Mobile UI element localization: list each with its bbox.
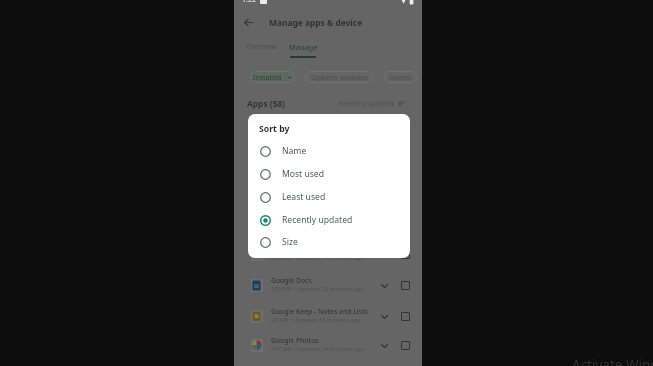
button[interactable]: Least used	[248, 186, 410, 208]
button[interactable]: Recently updated	[339, 96, 405, 110]
staticText: Games	[389, 73, 412, 82]
button[interactable]: Size	[248, 231, 410, 253]
button[interactable]: Installed	[250, 71, 295, 83]
button[interactable]: Expand details	[378, 249, 390, 261]
staticText: Least used	[282, 191, 326, 203]
staticText: 1:22	[242, 0, 256, 3]
staticText: 808 MB • Updated 31 minutes ago	[271, 254, 364, 262]
staticText: Most used	[282, 168, 325, 180]
staticText: Manage	[289, 42, 318, 52]
staticText: Activate Windows	[572, 356, 653, 366]
staticText: Installed	[253, 73, 282, 82]
button[interactable]: Expand details	[378, 280, 390, 292]
button[interactable]: Google Keep - Notes and Lists	[234, 297, 422, 327]
staticText: Name	[282, 145, 307, 157]
staticText: Size	[282, 236, 298, 248]
staticText: 347 MB • Updated 34 minutes ago	[271, 345, 364, 353]
staticText: Google Docs	[271, 276, 312, 285]
button[interactable]: Select app	[399, 310, 411, 322]
button[interactable]: Expand details	[378, 340, 390, 352]
staticText: Manage apps & device	[269, 17, 363, 28]
staticText: Sort by	[259, 123, 290, 135]
button[interactable]: 808 MB • Updated 31 minutes ago	[234, 235, 422, 265]
button[interactable]: Google Photos	[234, 326, 422, 356]
staticText: Google Photos	[271, 336, 319, 345]
button[interactable]: Expand details	[378, 311, 390, 323]
staticText: Google Keep - Notes and Lists	[271, 307, 368, 316]
staticText: 20 MB • Updated 33 minutes ago	[271, 316, 361, 324]
staticText: Updates available	[311, 73, 369, 82]
staticText: Recently updated	[339, 99, 394, 108]
button[interactable]: Google Docs	[234, 266, 422, 296]
button[interactable]: Select app	[399, 279, 411, 291]
button[interactable]: Name	[248, 140, 410, 162]
button[interactable]: Select app	[399, 248, 411, 260]
button[interactable]: Updates available	[305, 71, 374, 83]
button[interactable]: Overview	[242, 36, 280, 56]
staticText: Apps (58)	[247, 98, 286, 109]
button[interactable]: Manage	[285, 36, 321, 62]
staticText: Overview	[246, 42, 277, 51]
button[interactable]: Games	[384, 71, 417, 83]
button[interactable]: Most used	[248, 163, 410, 185]
staticText: Recently updated	[282, 214, 353, 226]
button[interactable]: Select app	[399, 339, 411, 351]
button[interactable]: Recently updated	[248, 209, 410, 231]
button[interactable]: Back	[240, 14, 256, 30]
staticText: 133 MB • Updated 32 minutes ago	[271, 285, 364, 293]
